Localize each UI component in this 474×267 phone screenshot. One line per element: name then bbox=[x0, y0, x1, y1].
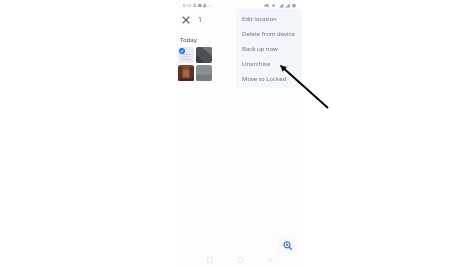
staticText: Today bbox=[180, 36, 197, 44]
staticText: Move to Locked Folder bbox=[242, 75, 302, 83]
button[interactable]: Lens search bbox=[278, 236, 297, 255]
staticText: Edit location bbox=[242, 15, 277, 23]
staticText: Delete from device bbox=[242, 30, 295, 38]
button[interactable]: Photo bbox=[196, 65, 212, 81]
staticText: 1 bbox=[198, 15, 203, 25]
staticText: 6:12 bbox=[183, 3, 191, 8]
button[interactable]: Back up now bbox=[236, 41, 302, 56]
staticText: Back up now bbox=[242, 45, 278, 53]
staticText: Unarchive bbox=[242, 60, 271, 68]
button[interactable]: Unarchive bbox=[236, 56, 302, 71]
button[interactable]: Move to Locked Folder bbox=[236, 71, 302, 86]
button[interactable]: Photo bbox=[178, 65, 194, 81]
button[interactable]: Photo bbox=[196, 47, 212, 63]
button[interactable]: Edit location bbox=[236, 11, 302, 26]
button[interactable]: Delete from device bbox=[236, 26, 302, 41]
button[interactable]: Selected photo bbox=[178, 47, 194, 63]
button[interactable]: Close selection bbox=[179, 13, 193, 27]
